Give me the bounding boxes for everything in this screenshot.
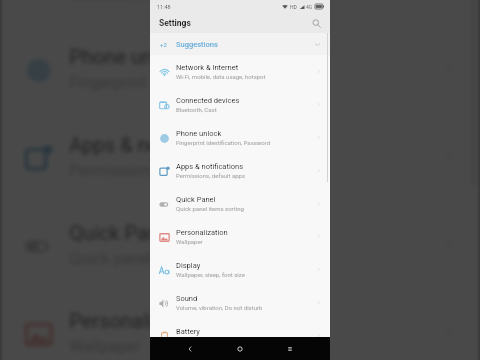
staticText: Suggestions xyxy=(176,40,218,49)
staticText: Bluetooth, Cast xyxy=(69,0,179,2)
staticText: Wallpaper xyxy=(176,238,203,245)
staticText: Personalization xyxy=(176,228,228,237)
button[interactable]: Quick Panel xyxy=(0,200,480,288)
staticText: Sound xyxy=(176,294,198,303)
staticText: Connected devices xyxy=(176,96,240,105)
staticText: HD xyxy=(290,4,297,10)
staticText: Quick Panel xyxy=(69,221,176,245)
staticText: Apps & notifications xyxy=(176,162,243,171)
staticText: 11:48 xyxy=(157,4,171,10)
staticText: Phone unlock xyxy=(176,129,222,138)
staticText: Fingerprint identification, Password xyxy=(176,139,271,146)
staticText: Quick panel items sorting xyxy=(176,205,244,212)
button[interactable]: Connected devices xyxy=(150,88,330,121)
staticText: Permissions, default apps xyxy=(176,172,246,179)
button[interactable]: Phone unlock xyxy=(0,24,480,112)
button[interactable]: Apps & notifications xyxy=(0,112,480,200)
button[interactable]: Display xyxy=(150,253,330,286)
button[interactable]: Connected devices xyxy=(0,0,480,24)
button[interactable]: Search xyxy=(308,15,324,31)
button[interactable]: +2 xyxy=(150,33,330,55)
staticText: Settings xyxy=(159,18,191,28)
staticText: Personalization xyxy=(69,309,208,333)
button[interactable]: Network & Internet xyxy=(150,55,330,88)
button[interactable]: Quick Panel xyxy=(150,187,330,220)
button[interactable]: Recent apps xyxy=(280,339,300,359)
staticText: +2 xyxy=(160,41,167,48)
button[interactable]: Sound xyxy=(150,286,330,319)
button[interactable]: Apps & notifications xyxy=(150,154,330,187)
staticText: Quick panel items sorting xyxy=(69,248,251,266)
button[interactable]: Back xyxy=(180,339,200,359)
staticText: Bluetooth, Cast xyxy=(176,106,217,113)
button[interactable]: Home xyxy=(230,339,250,359)
staticText: Apps & notifications xyxy=(69,133,248,157)
staticText: Fingerprint identification, Password xyxy=(69,72,323,90)
staticText: Display xyxy=(176,261,201,270)
staticText: Volume, vibration, Do not disturb xyxy=(176,304,263,311)
button[interactable]: Battery xyxy=(150,319,330,337)
button[interactable]: Phone unlock xyxy=(150,121,330,154)
button[interactable]: Personalization xyxy=(150,220,330,253)
staticText: 4G xyxy=(306,4,313,10)
staticText: Wallpaper, sleep, font size xyxy=(176,271,245,278)
staticText: Phone unlock xyxy=(69,45,192,69)
staticText: Quick Panel xyxy=(176,195,216,204)
staticText: Network & Internet xyxy=(176,63,239,72)
staticText: Battery xyxy=(176,327,200,336)
button[interactable]: Personalization xyxy=(0,288,480,360)
staticText: Wi-Fi, mobile, data usage, hotspot xyxy=(176,73,266,80)
staticText: Permissions, default apps xyxy=(69,160,256,178)
